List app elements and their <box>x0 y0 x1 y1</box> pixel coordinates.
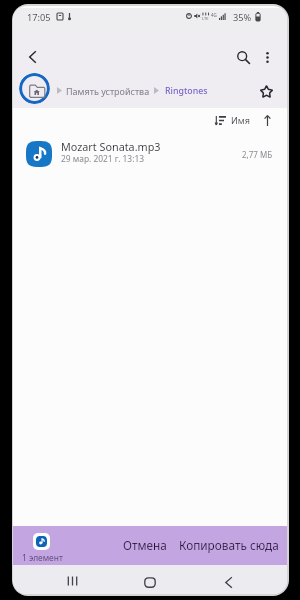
button[interactable]: Back <box>20 45 44 69</box>
staticText: 17:05 <box>27 11 51 24</box>
button[interactable]: Back <box>214 565 242 592</box>
button[interactable]: Add to favorites <box>254 79 279 104</box>
button[interactable]: Ringtones <box>165 85 208 97</box>
staticText: 2,77 МБ <box>242 149 273 160</box>
staticText: 1 элемент <box>22 552 63 563</box>
button[interactable]: Mozart Sonata.mp3 <box>13 132 287 176</box>
staticText: LTE <box>202 16 209 21</box>
button[interactable]: Копировать сюда <box>175 534 283 556</box>
button[interactable]: Sort ascending <box>256 109 278 131</box>
button[interactable]: Отмена <box>116 534 174 556</box>
staticText: Отмена <box>123 537 167 553</box>
button[interactable]: Home <box>136 565 164 592</box>
staticText: Имя <box>231 114 250 126</box>
staticText: 29 мар. 2021 г. 13:13 <box>61 153 145 164</box>
button[interactable]: Recent apps <box>58 565 86 592</box>
button[interactable]: Память устройства <box>66 85 150 97</box>
staticText: 35% <box>233 11 252 24</box>
button[interactable]: Search <box>231 45 255 69</box>
button[interactable]: More options <box>255 45 279 69</box>
staticText: Mozart Sonata.mp3 <box>61 139 161 154</box>
button[interactable]: Имя <box>212 109 253 131</box>
staticText: 4G <box>211 12 217 18</box>
button[interactable]: Home folder <box>19 73 50 104</box>
button[interactable] <box>31 530 52 552</box>
staticText: Копировать сюда <box>179 537 279 553</box>
